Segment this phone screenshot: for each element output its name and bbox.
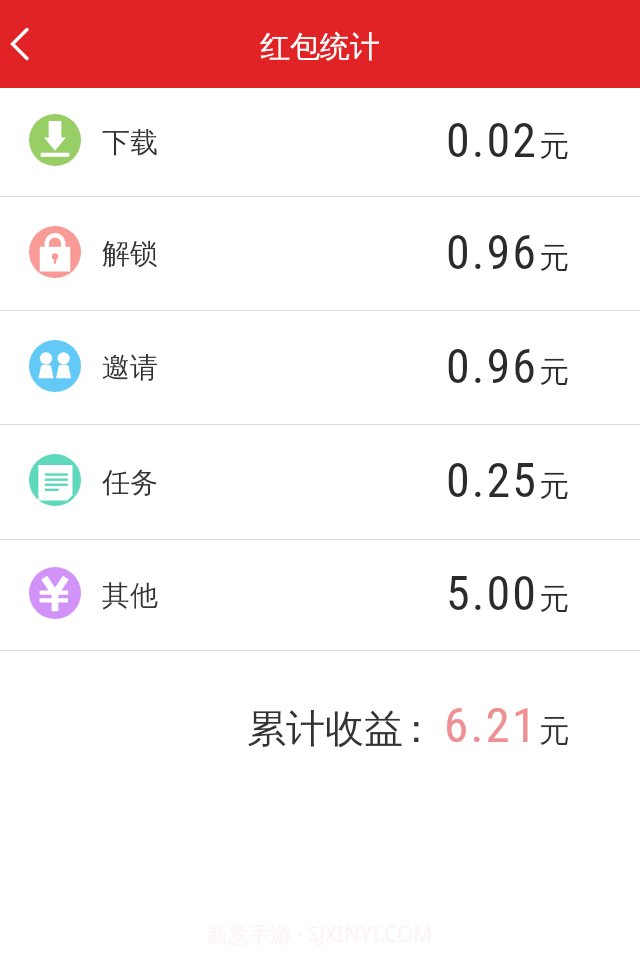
button[interactable]: 邀请	[0, 311, 640, 424]
staticText: 0.02	[446, 112, 539, 168]
staticText: 0.25	[446, 452, 539, 508]
staticText: 0.96	[446, 338, 539, 394]
staticText: 累计收益	[247, 704, 403, 753]
staticText: 邀请	[102, 350, 158, 385]
staticText: 6.21	[444, 697, 539, 754]
staticText: 其他	[102, 578, 158, 613]
button[interactable]: 其他	[0, 540, 640, 650]
button[interactable]: 下载	[0, 88, 640, 196]
staticText: 任务	[102, 465, 158, 500]
staticText: 元	[539, 353, 569, 391]
staticText: ：	[397, 704, 436, 753]
staticText: 红包统计	[260, 28, 380, 66]
staticText: 元	[539, 467, 569, 505]
button[interactable]: 解锁	[0, 197, 640, 310]
button[interactable]: Back	[0, 14, 60, 74]
staticText: 元	[539, 580, 569, 618]
staticText: 5.00	[446, 565, 539, 621]
staticText: 0.96	[446, 224, 539, 280]
staticText: 元	[539, 239, 569, 277]
button[interactable]: 任务	[0, 425, 640, 539]
staticText: 解锁	[102, 236, 158, 271]
staticText: 新意手游 · SJXINYI.COM	[207, 920, 433, 949]
staticText: 下载	[102, 125, 158, 160]
staticText: 元	[539, 711, 570, 750]
staticText: 元	[539, 127, 569, 165]
